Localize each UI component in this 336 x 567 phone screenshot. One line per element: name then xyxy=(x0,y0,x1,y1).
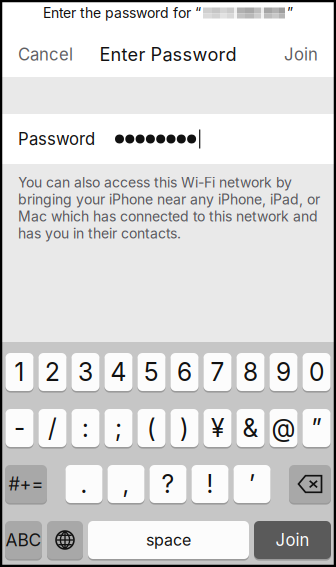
button[interactable]: space xyxy=(88,521,249,559)
button[interactable]: ( xyxy=(137,409,165,447)
button[interactable]: : xyxy=(71,409,99,447)
button[interactable]: 6 xyxy=(170,353,198,391)
button[interactable]: . xyxy=(65,465,102,503)
staticText: @ xyxy=(271,413,295,443)
button[interactable]: 4 xyxy=(104,353,132,391)
button[interactable]: ” xyxy=(302,409,330,447)
staticText: 7 xyxy=(210,357,224,387)
staticText: ABC xyxy=(5,529,41,550)
staticText: - xyxy=(14,413,25,443)
staticText: ? xyxy=(161,469,174,499)
button[interactable]: 1 xyxy=(5,353,33,391)
staticText: 4 xyxy=(110,357,126,387)
button[interactable]: 5 xyxy=(137,353,165,391)
button[interactable]: 9 xyxy=(269,353,297,391)
staticText: 6 xyxy=(177,357,192,387)
button[interactable]: 2 xyxy=(38,353,66,391)
button[interactable]: ? xyxy=(149,465,186,503)
staticText: space xyxy=(146,530,191,550)
button[interactable]: 0 xyxy=(302,353,330,391)
staticText: ; xyxy=(115,413,122,443)
button[interactable]: Join xyxy=(254,521,331,559)
button[interactable]: / xyxy=(38,409,66,447)
staticText: 2 xyxy=(45,357,60,387)
button[interactable]: Join xyxy=(274,34,318,75)
staticText: 1 xyxy=(14,357,24,387)
staticText: #+= xyxy=(8,473,43,495)
button[interactable]: @ xyxy=(269,409,297,447)
button[interactable]: 3 xyxy=(71,353,99,391)
staticText: . xyxy=(80,469,87,499)
staticText: 3 xyxy=(78,357,93,387)
staticText: ’ xyxy=(249,469,255,499)
button[interactable]: 8 xyxy=(236,353,264,391)
button[interactable]: Next keyboard xyxy=(47,521,83,559)
staticText: ( xyxy=(147,413,156,443)
staticText: / xyxy=(48,413,57,443)
staticText: 5 xyxy=(144,357,159,387)
button[interactable]: ¥ xyxy=(203,409,231,447)
button[interactable]: & xyxy=(236,409,264,447)
staticText: 8 xyxy=(243,357,258,387)
staticText: & xyxy=(242,413,258,443)
button[interactable]: ) xyxy=(170,409,198,447)
staticText: , xyxy=(122,469,129,499)
staticText: 0 xyxy=(309,357,324,387)
staticText: You can also access this Wi-Fi network b… xyxy=(18,174,320,242)
button[interactable]: - xyxy=(5,409,33,447)
staticText: ¥ xyxy=(211,413,224,443)
button[interactable]: ! xyxy=(191,465,228,503)
staticText: 9 xyxy=(276,357,291,387)
staticText: ” xyxy=(311,413,321,443)
staticText: Enter Password xyxy=(99,43,236,65)
staticText: ! xyxy=(206,469,213,499)
button[interactable]: Cancel xyxy=(18,34,83,75)
staticText: Join xyxy=(284,44,318,65)
staticText: Enter the password for “ xyxy=(43,4,201,21)
staticText: Cancel xyxy=(18,44,73,65)
button[interactable]: ’ xyxy=(233,465,270,503)
button[interactable]: ; xyxy=(104,409,132,447)
button[interactable]: Delete xyxy=(289,465,331,503)
staticText: : xyxy=(82,413,89,443)
staticText: Join xyxy=(275,530,309,550)
staticText: ” xyxy=(287,4,293,21)
button[interactable]: #+= xyxy=(5,465,47,503)
staticText: ) xyxy=(180,413,189,443)
button[interactable]: ABC xyxy=(5,521,42,559)
button[interactable]: , xyxy=(107,465,144,503)
button[interactable]: 7 xyxy=(203,353,231,391)
staticText: Password xyxy=(18,129,95,149)
